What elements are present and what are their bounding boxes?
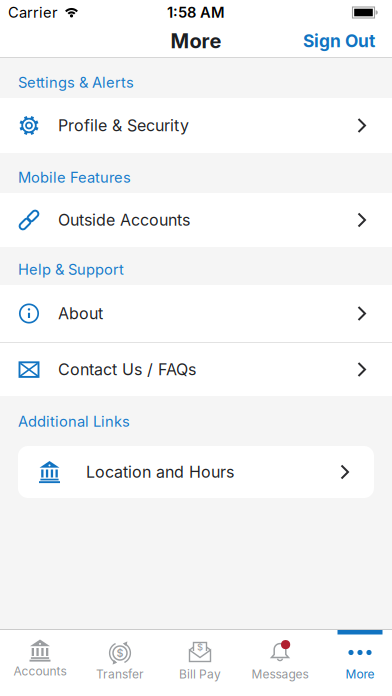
- staticText: Outside Accounts: [58, 211, 190, 229]
- staticText: $: [116, 647, 123, 659]
- button[interactable]: About: [0, 285, 392, 342]
- staticText: Contact Us / FAQs: [58, 360, 196, 379]
- staticText: Location and Hours: [86, 463, 234, 481]
- staticText: Bill Pay: [179, 667, 221, 681]
- staticText: More: [170, 29, 221, 53]
- button[interactable]: Outside Accounts: [0, 193, 392, 247]
- staticText: Carrier: [8, 4, 58, 21]
- staticText: Accounts: [13, 664, 66, 678]
- staticText: Additional Links: [18, 413, 130, 430]
- button[interactable]: Sign Out: [303, 31, 375, 51]
- staticText: $: [197, 641, 203, 652]
- staticText: More: [345, 667, 374, 681]
- button[interactable]: $: [160, 630, 240, 696]
- staticText: About: [58, 304, 103, 323]
- staticText: Settings & Alerts: [18, 74, 134, 91]
- button[interactable]: More: [320, 630, 392, 696]
- button[interactable]: Location and Hours: [18, 446, 374, 498]
- staticText: Sign Out: [303, 31, 375, 51]
- button[interactable]: Accounts: [0, 630, 80, 696]
- staticText: Profile & Security: [58, 116, 189, 135]
- button[interactable]: $: [80, 630, 160, 696]
- staticText: Mobile Features: [18, 169, 131, 186]
- staticText: Transfer: [96, 667, 144, 681]
- staticText: Messages: [251, 667, 308, 681]
- staticText: Help & Support: [18, 261, 124, 278]
- button[interactable]: Profile & Security: [0, 98, 392, 153]
- button[interactable]: Contact Us / FAQs: [0, 343, 392, 396]
- button[interactable]: Messages: [240, 630, 320, 696]
- staticText: 1:58 AM: [167, 4, 225, 21]
